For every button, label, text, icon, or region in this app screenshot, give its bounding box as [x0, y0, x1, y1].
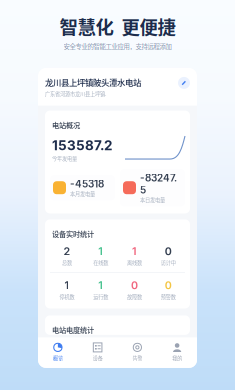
- button[interactable]: 我的: [157, 337, 197, 368]
- staticText: 安全专业的智能工业应用，支持远程添加: [63, 42, 171, 51]
- staticText: 设备实时统计: [52, 228, 94, 239]
- staticText: 离线数: [127, 259, 142, 266]
- button[interactable]: 概览: [38, 337, 78, 368]
- staticText: 告警: [132, 354, 142, 362]
- staticText: 设备: [93, 354, 103, 362]
- button[interactable]: 设备: [78, 337, 118, 368]
- staticText: 停机数: [59, 293, 74, 300]
- staticText: 1: [98, 245, 103, 258]
- staticText: 访计中: [161, 259, 176, 266]
- staticText: 电站概况: [52, 120, 80, 130]
- staticText: 龙川县上坪镇陂头潭水电站: [45, 76, 141, 88]
- staticText: 本日发电量: [140, 196, 165, 203]
- staticText: 1: [98, 279, 103, 292]
- staticText: 本月发电量: [70, 190, 95, 197]
- staticText: -45318: [70, 178, 104, 190]
- staticText: 电站电度统计: [52, 324, 94, 335]
- button[interactable]: 编辑电站: [178, 77, 190, 89]
- staticText: 概览: [53, 354, 63, 362]
- staticText: 153587.2: [52, 137, 112, 153]
- staticText: 在线数: [93, 259, 108, 266]
- button[interactable]: 告警: [117, 337, 157, 368]
- staticText: 1: [64, 279, 69, 292]
- staticText: 运行数: [93, 293, 108, 300]
- staticText: 1: [132, 245, 137, 258]
- staticText: 我的: [172, 354, 182, 362]
- staticText: 广东省河源市龙川县上坪镇.: [45, 90, 106, 98]
- staticText: 0: [165, 245, 172, 258]
- staticText: 2: [63, 245, 70, 258]
- staticText: 故障数: [127, 293, 142, 300]
- staticText: 预警数: [161, 293, 176, 300]
- staticText: 总数: [62, 259, 72, 266]
- staticText: 智慧化 更便捷: [59, 13, 175, 40]
- staticText: -83247.5: [140, 172, 177, 196]
- staticText: 0: [165, 279, 172, 292]
- staticText: 今年发电量: [52, 154, 77, 162]
- staticText: 0: [131, 279, 138, 292]
